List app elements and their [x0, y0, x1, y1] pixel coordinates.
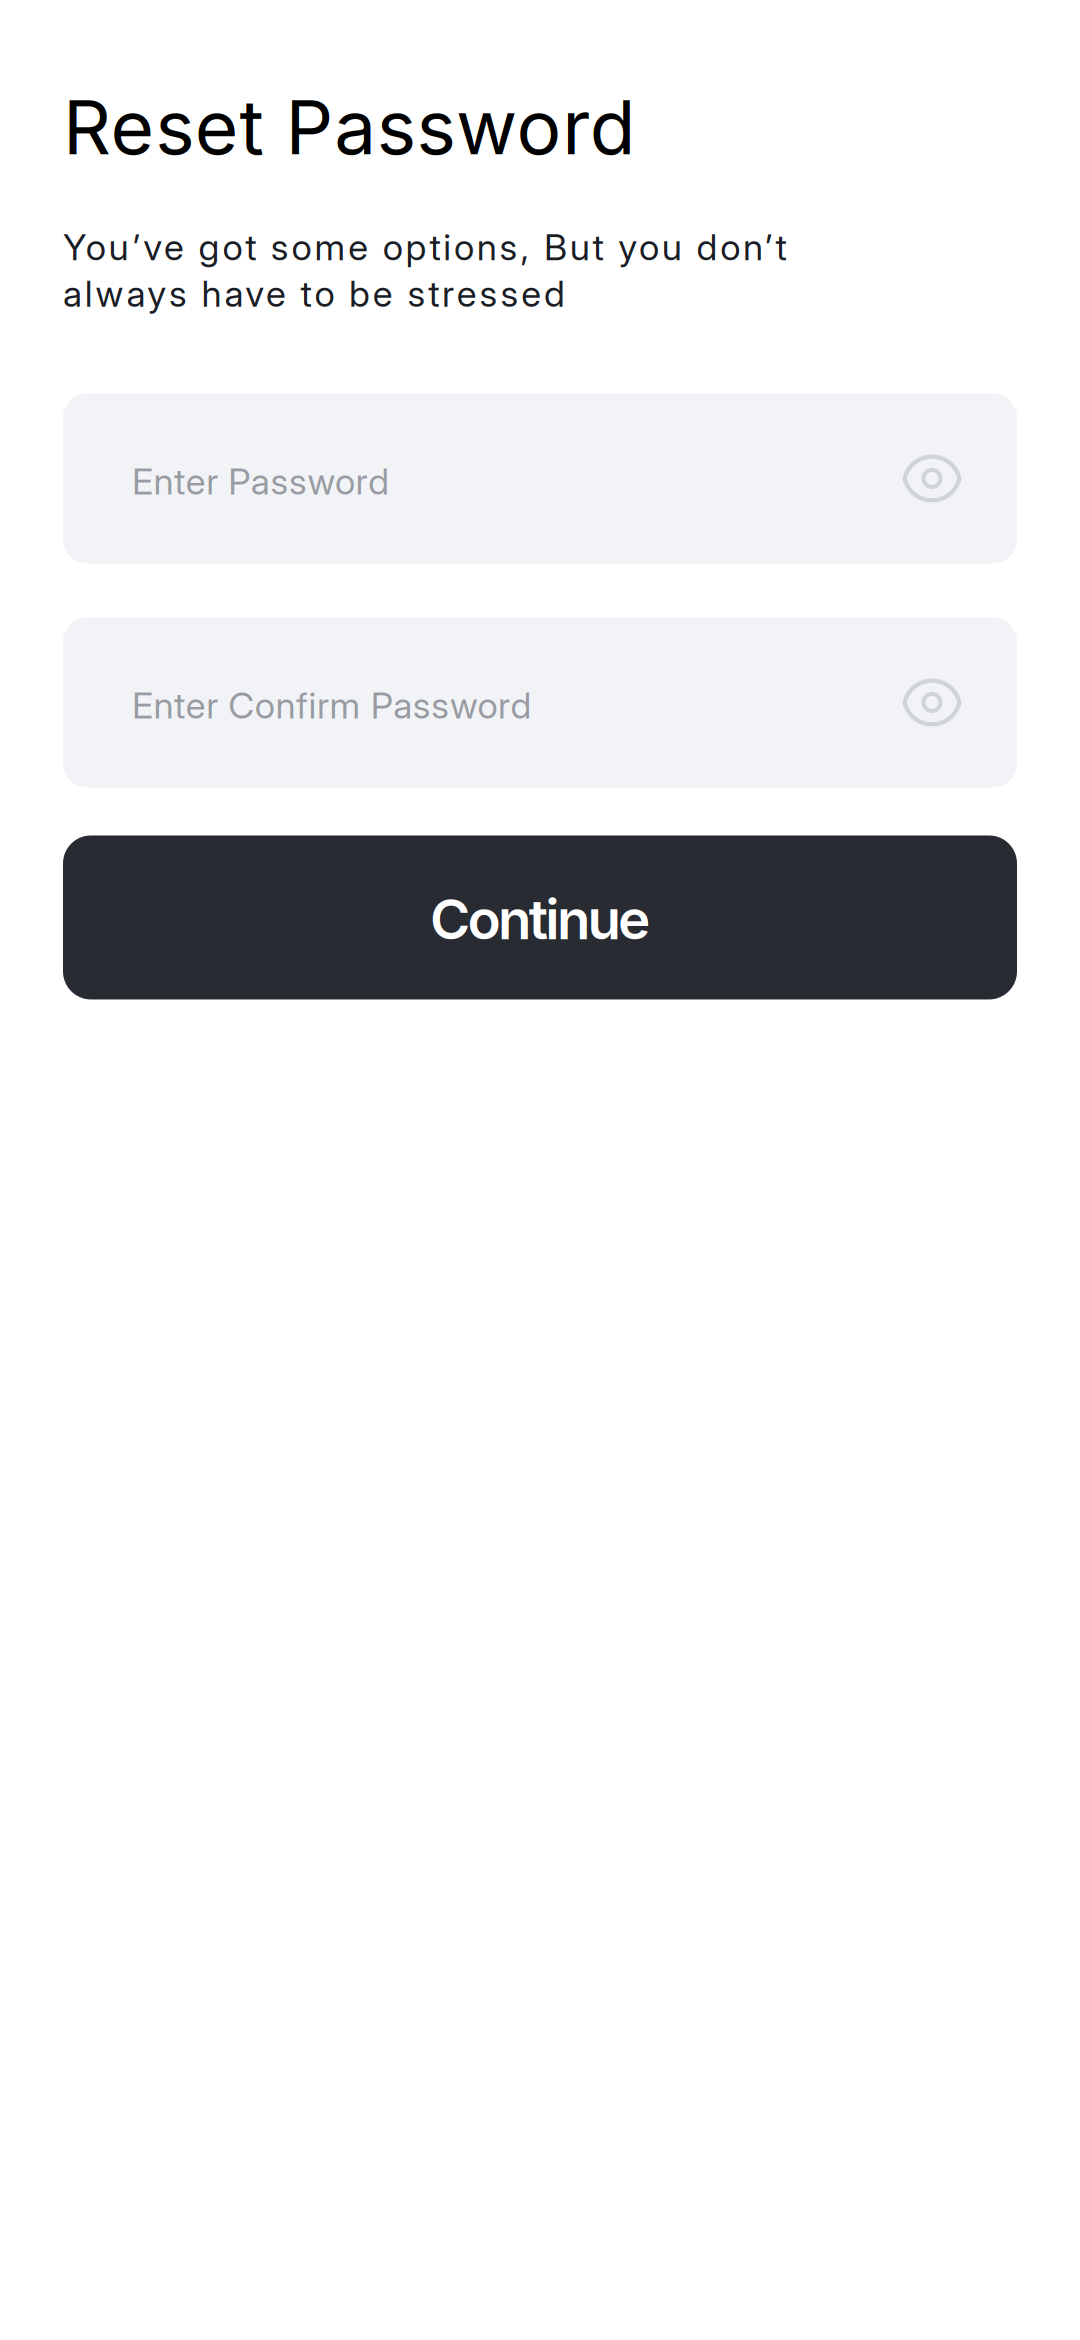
staticText: You’ve got some options, But you don’t a…: [63, 225, 787, 315]
button[interactable]: Show Enter Confirm Password: [877, 617, 987, 787]
staticText: Enter Password: [132, 460, 389, 503]
button[interactable]: Show Enter Password: [877, 393, 987, 563]
staticText: Enter Confirm Password: [132, 684, 531, 727]
staticText: Continue: [430, 886, 650, 952]
staticText: Reset Password: [63, 82, 636, 172]
button[interactable]: Continue: [63, 835, 1017, 999]
